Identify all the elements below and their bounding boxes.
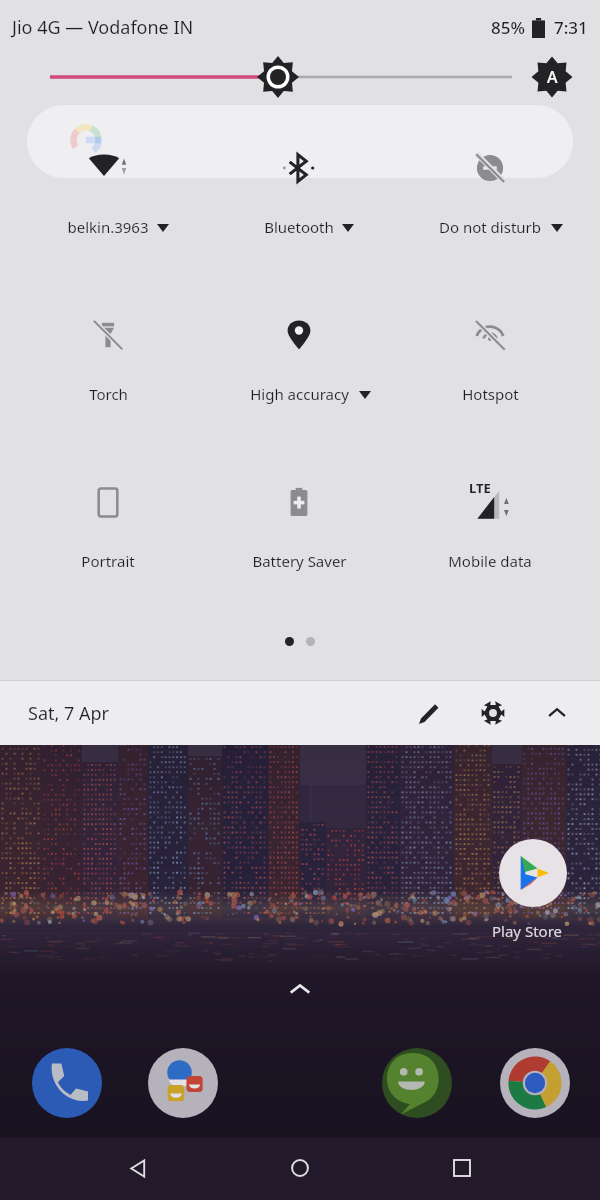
staticText: A [547,66,558,88]
button[interactable]: Play Store [499,839,567,907]
staticText: Hotspot [462,384,519,404]
button[interactable]: Chrome [500,1048,570,1118]
button[interactable] [23,289,193,409]
button[interactable] [214,122,384,242]
staticText: Battery Saver [252,551,347,571]
staticText: High accuracy [250,384,349,404]
button[interactable]: Contacts [148,1048,218,1118]
staticText: Do not disturb [439,217,541,237]
button[interactable]: Back [114,1144,162,1192]
button[interactable]: Settings [470,690,516,736]
staticText: Portrait [81,551,135,571]
button[interactable] [405,456,575,576]
button[interactable]: Home [276,1144,324,1192]
staticText: Sat, 7 Apr [28,701,109,726]
button[interactable]: Edit tiles [406,690,452,736]
button[interactable] [23,122,193,242]
staticText: Bluetooth [264,217,334,237]
staticText: 85% [491,16,525,39]
button[interactable] [214,456,384,576]
staticText: Mobile data [448,551,532,571]
button[interactable] [23,456,193,576]
staticText: Play Store [492,921,562,941]
button[interactable] [214,289,384,409]
button[interactable]: Messages [382,1048,452,1118]
button[interactable]: Phone [32,1048,102,1118]
button[interactable]: Recents [438,1144,486,1192]
button[interactable] [405,289,575,409]
staticText: belkin.3963 [67,217,149,237]
staticText: Jio 4G — Vodafone IN [12,15,194,40]
button[interactable] [405,122,575,242]
button[interactable]: Auto brightness [530,55,574,99]
staticText: Torch [89,384,128,404]
staticText: LTE [469,479,491,497]
staticText: 7:31 [554,16,588,39]
button[interactable]: Collapse [534,690,580,736]
